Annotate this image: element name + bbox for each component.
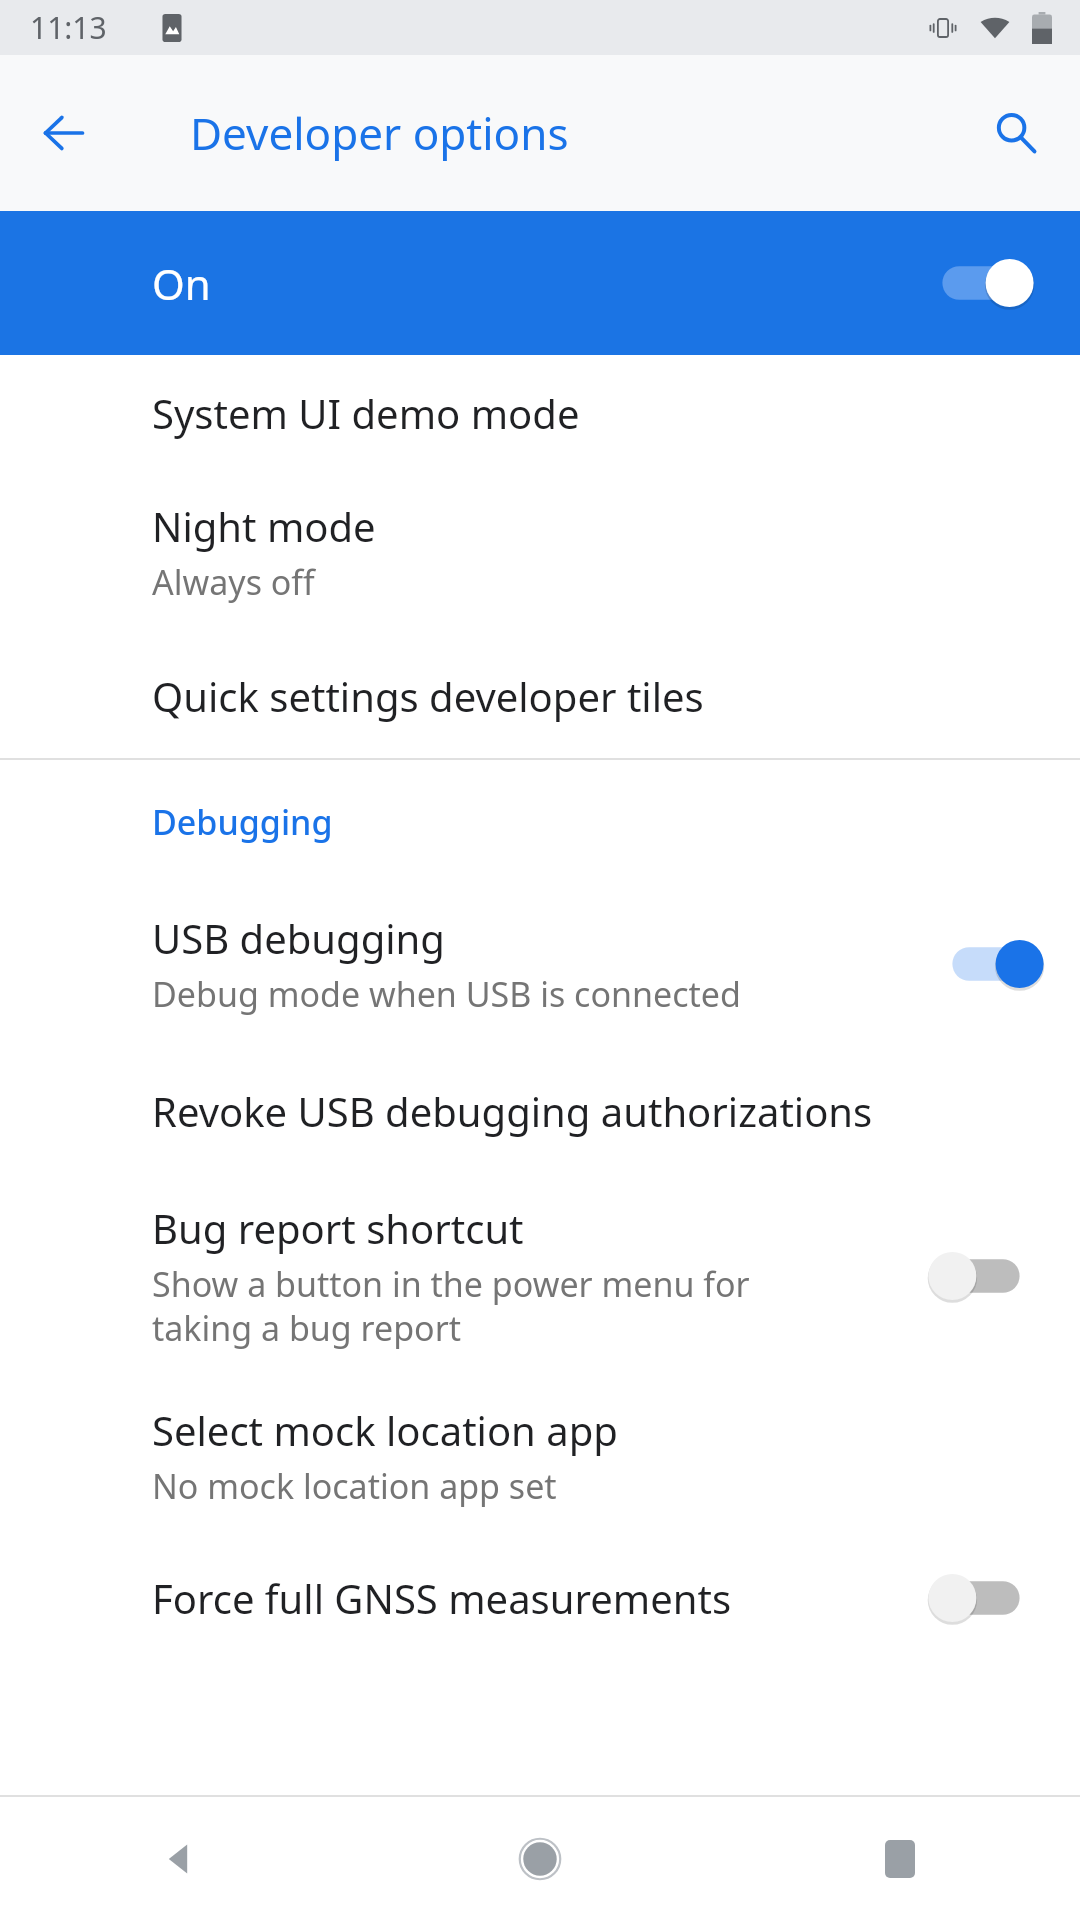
button[interactable]: Quick settings developer tiles xyxy=(0,634,1080,758)
staticText: On xyxy=(152,255,928,312)
button[interactable]: Toggle xyxy=(938,1246,1034,1306)
staticText: Revoke USB debugging authorizations xyxy=(152,1084,873,1138)
button[interactable]: Revoke USB debugging authorizations xyxy=(0,1044,1080,1178)
button[interactable]: Bug report shortcut xyxy=(0,1178,1080,1374)
button[interactable]: Force full GNSS measurements xyxy=(0,1538,1080,1658)
button[interactable]: Home xyxy=(360,1797,720,1920)
button[interactable]: USB debugging xyxy=(0,884,1080,1044)
staticText: System UI demo mode xyxy=(152,386,580,440)
button[interactable]: Recent apps xyxy=(720,1797,1080,1920)
button[interactable]: System UI demo mode xyxy=(0,355,1080,470)
button[interactable]: Back xyxy=(0,1797,360,1920)
staticText: Force full GNSS measurements xyxy=(152,1571,732,1625)
staticText: Debugging xyxy=(152,799,333,845)
button[interactable]: Back xyxy=(24,93,104,173)
staticText: Night mode xyxy=(152,499,376,553)
staticText: Show a button in the power menu for taki… xyxy=(152,1261,750,1351)
button[interactable]: On xyxy=(0,211,1080,355)
staticText: 11:13 xyxy=(30,7,107,48)
staticText: Debug mode when USB is connected xyxy=(152,971,741,1017)
staticText: No mock location app set xyxy=(152,1463,557,1509)
button[interactable]: Select mock location app xyxy=(0,1374,1080,1538)
staticText: Bug report shortcut xyxy=(152,1201,524,1255)
staticText: USB debugging xyxy=(152,911,445,965)
staticText: Quick settings developer tiles xyxy=(152,669,704,723)
button[interactable]: Toggle xyxy=(928,253,1024,313)
button[interactable]: Toggle xyxy=(938,934,1034,994)
button[interactable]: Night mode xyxy=(0,470,1080,634)
staticText: Developer options xyxy=(190,103,569,163)
staticText: Always off xyxy=(152,559,315,605)
button[interactable]: Search xyxy=(976,93,1056,173)
button[interactable]: Toggle xyxy=(938,1568,1034,1628)
staticText: Select mock location app xyxy=(152,1403,618,1457)
